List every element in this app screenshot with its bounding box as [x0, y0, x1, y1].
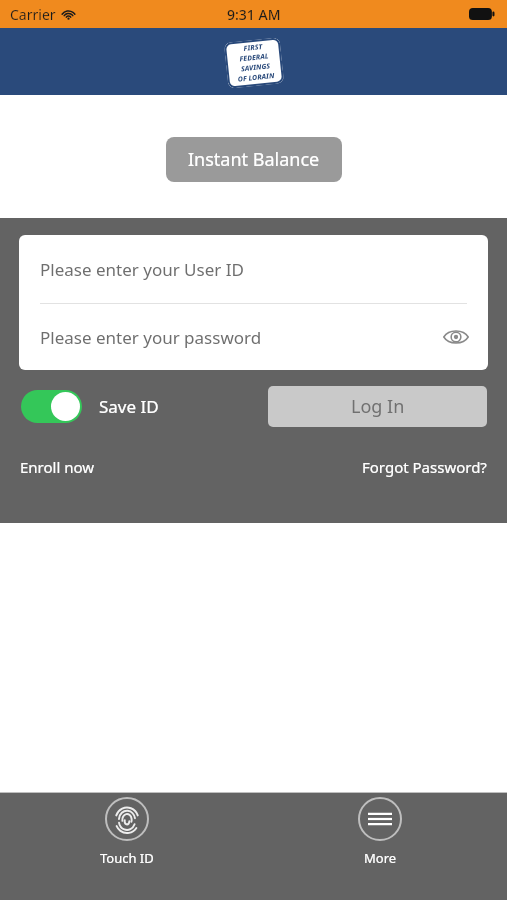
staticText: FEDERAL — [239, 51, 269, 64]
button[interactable]: Enroll now — [20, 457, 95, 477]
staticText: SAVINGS — [240, 61, 271, 74]
staticText: Enroll now — [20, 457, 95, 477]
button[interactable]: Forgot Password? — [362, 457, 487, 477]
staticText: 9:31 AM — [227, 5, 281, 24]
staticText: More — [364, 849, 397, 867]
staticText: Carrier — [10, 5, 56, 24]
button[interactable]: Save ID — [21, 390, 159, 423]
staticText: FIRST — [243, 42, 263, 54]
button[interactable]: First Federal Savings of Lorain — [224, 37, 284, 89]
staticText: Forgot Password? — [362, 457, 487, 477]
staticText: Please enter your User ID — [40, 258, 244, 281]
staticText: OF LORAIN — [237, 71, 275, 85]
button[interactable]: Instant Balance — [166, 137, 342, 182]
button[interactable]: Show password — [438, 319, 474, 355]
button[interactable]: Log In — [268, 386, 487, 427]
button[interactable]: Please enter your password — [19, 304, 488, 370]
button[interactable]: Touch ID — [86, 793, 168, 871]
staticText: Please enter your password — [40, 326, 262, 349]
staticText: Instant Balance — [188, 147, 320, 172]
button[interactable]: Please enter your User ID — [19, 235, 488, 303]
staticText: Save ID — [99, 395, 159, 418]
button[interactable]: More — [344, 793, 416, 871]
staticText: Touch ID — [100, 849, 154, 867]
staticText: Log In — [351, 394, 405, 419]
